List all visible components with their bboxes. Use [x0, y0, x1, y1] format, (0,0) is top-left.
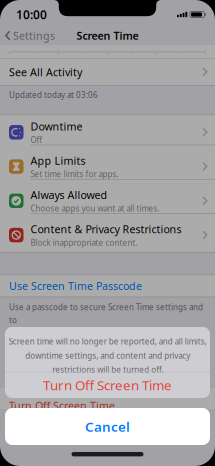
staticText: Turn Off Screen Time	[9, 399, 115, 413]
staticText: Turn Off Screen Time	[43, 376, 172, 394]
button[interactable]: App Limits	[0, 149, 215, 184]
button[interactable]: Content & Privacy Restrictions	[0, 218, 215, 252]
button[interactable]: Turn Off Screen Time	[5, 372, 210, 398]
staticText: Screen time will no longer be reported, …	[8, 336, 206, 375]
staticText: 10:00	[16, 6, 47, 22]
button[interactable]: Use Screen Time Passcode	[0, 275, 215, 297]
button[interactable]: Cancel	[5, 408, 210, 445]
staticText: Settings	[13, 28, 55, 43]
staticText: Updated today at 03:06	[9, 90, 98, 100]
button[interactable]: See All Activity	[0, 59, 215, 85]
staticText: App Limits	[30, 154, 85, 168]
staticText: Use a passcode to secure Screen Time set…	[9, 302, 203, 338]
staticText: See All Activity	[9, 65, 82, 79]
button[interactable]: Back	[0, 28, 55, 43]
button[interactable]: Downtime	[0, 115, 215, 149]
staticText: Cancel	[85, 418, 130, 435]
staticText: Always Allowed	[30, 188, 107, 202]
staticText: Downtime	[30, 119, 82, 133]
staticText: Block inappropriate content.	[30, 237, 137, 248]
staticText: Choose apps you want at all times.	[30, 203, 159, 214]
button[interactable]: Turn Off Screen Time	[9, 399, 115, 413]
staticText: Screen Time	[76, 28, 138, 43]
staticText: Content & Privacy Restrictions	[30, 222, 181, 236]
staticText: Set time limits for apps.	[30, 169, 118, 179]
button[interactable]: Always Allowed	[0, 184, 215, 218]
staticText: Off	[30, 135, 42, 145]
staticText: Use Screen Time Passcode	[9, 279, 142, 293]
